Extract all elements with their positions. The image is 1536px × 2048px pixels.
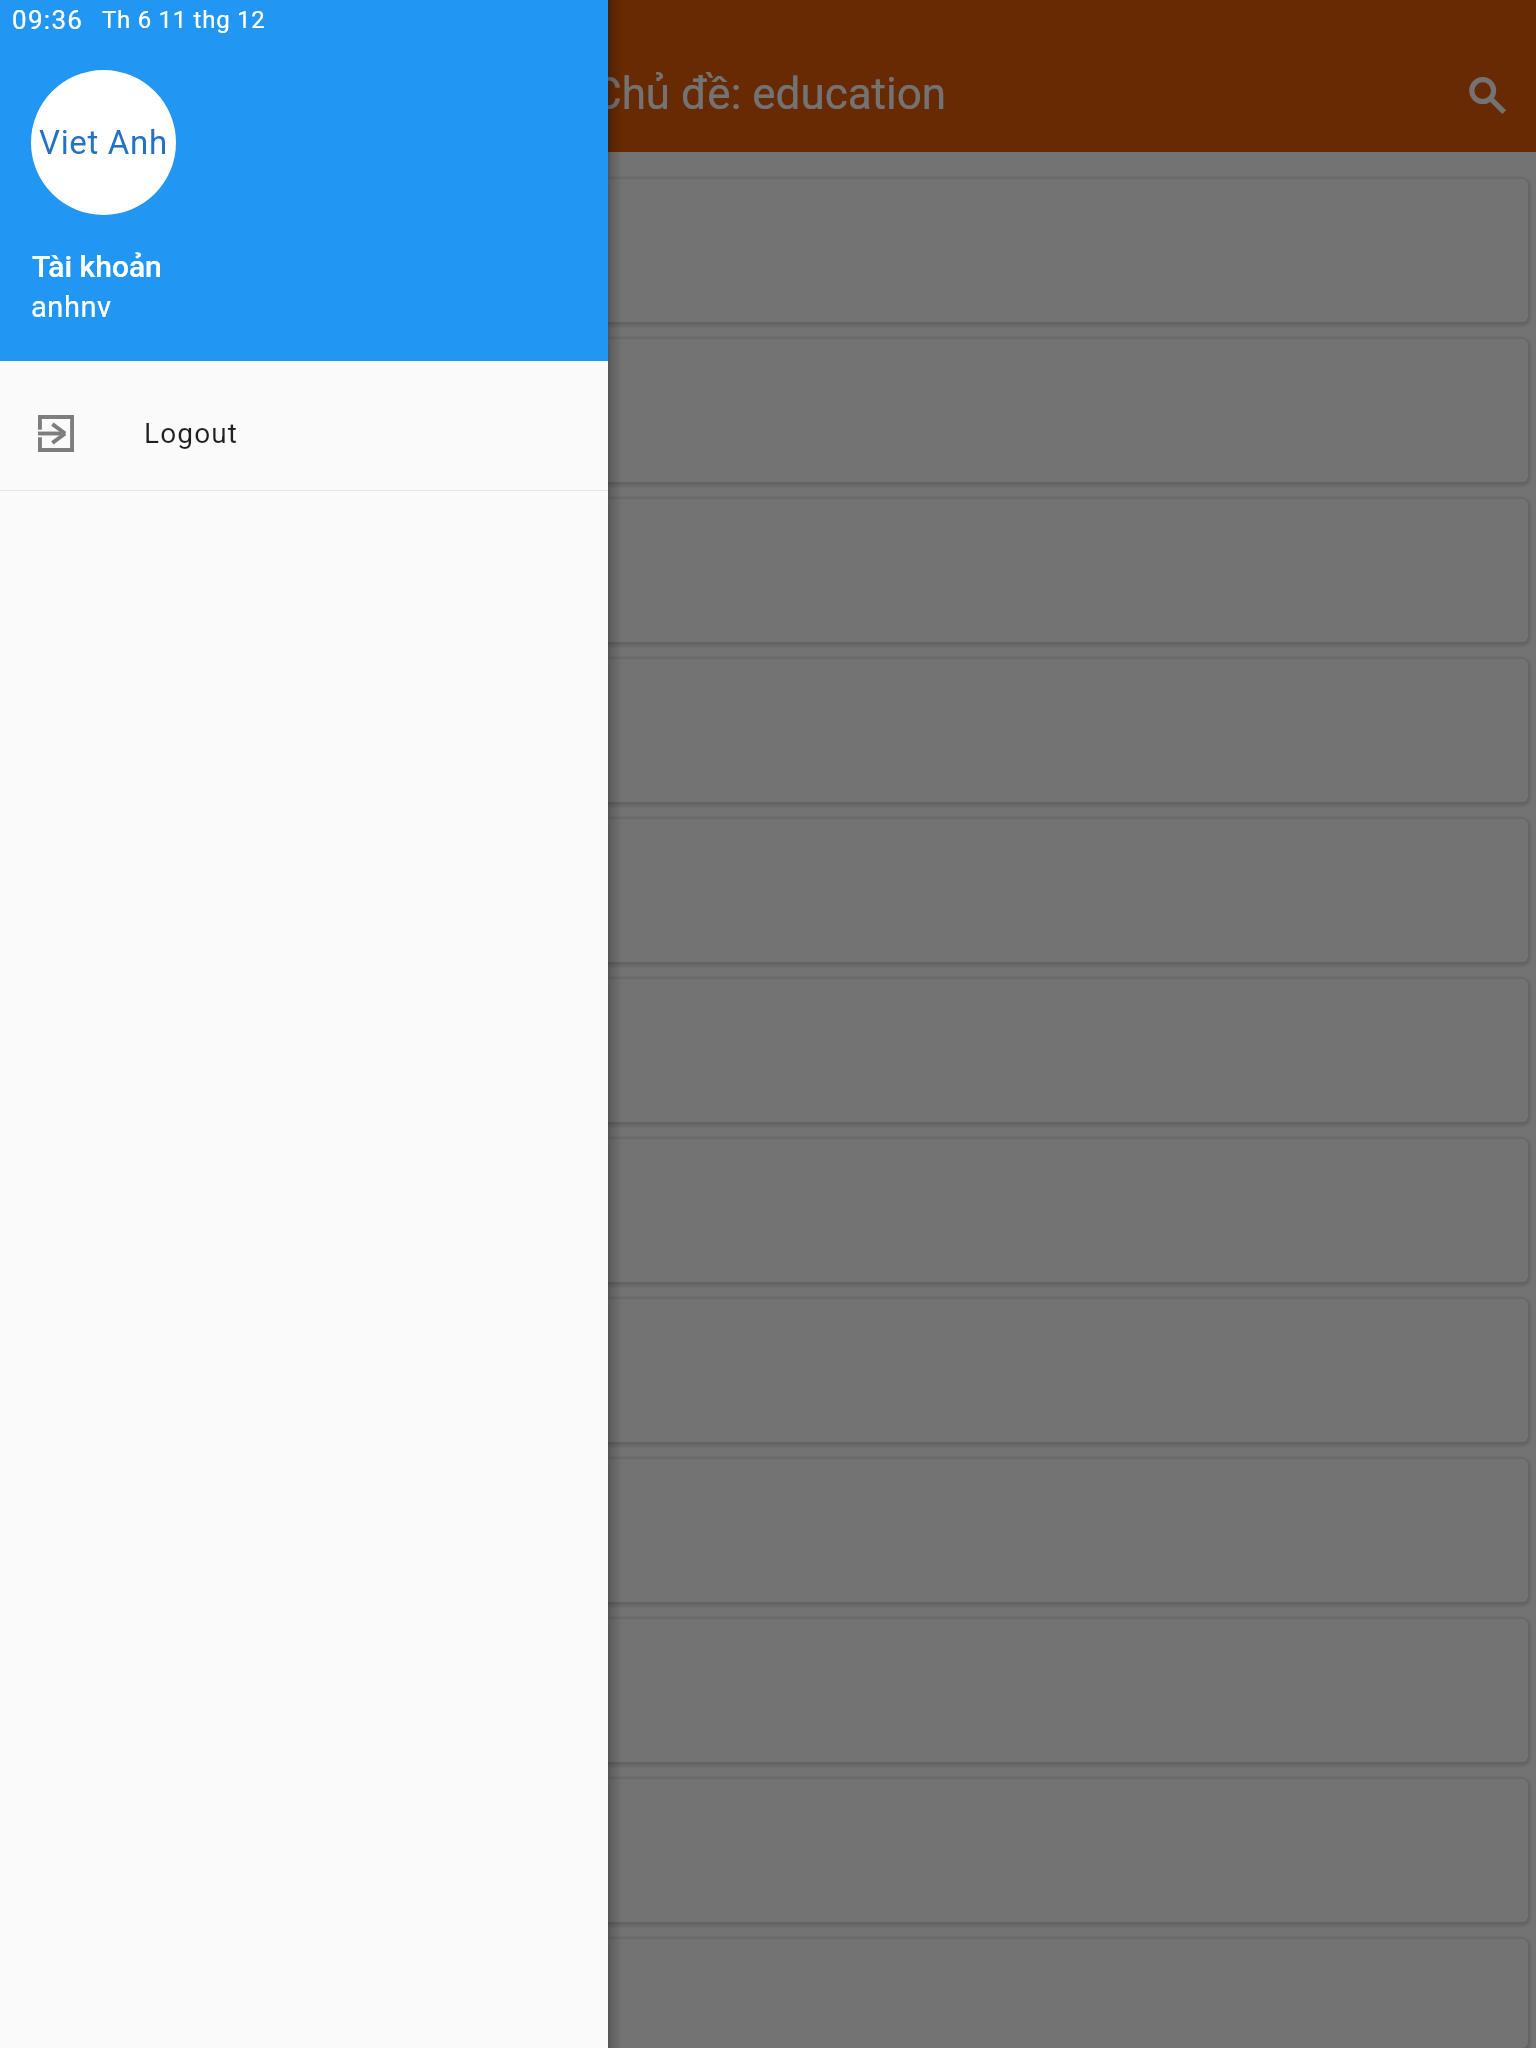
button[interactable] bbox=[0, 979, 1536, 1122]
button[interactable] bbox=[0, 1939, 1536, 2048]
button[interactable] bbox=[0, 499, 1536, 642]
staticText: Tài khoản bbox=[32, 249, 162, 284]
button[interactable] bbox=[0, 1619, 1536, 1762]
button[interactable]: Logout bbox=[0, 361, 608, 490]
button[interactable] bbox=[0, 659, 1536, 802]
button[interactable] bbox=[0, 1459, 1536, 1602]
button[interactable] bbox=[0, 1779, 1536, 1922]
button[interactable] bbox=[0, 819, 1536, 962]
button[interactable]: Search bbox=[1440, 48, 1536, 144]
button[interactable] bbox=[0, 1139, 1536, 1282]
staticText: anhnv bbox=[31, 290, 112, 324]
staticText: Viet Anh bbox=[39, 123, 168, 162]
staticText: Logout bbox=[144, 417, 239, 450]
button[interactable] bbox=[0, 179, 1536, 322]
button[interactable] bbox=[0, 339, 1536, 482]
button[interactable] bbox=[0, 1299, 1536, 1442]
staticText: 09:36 bbox=[12, 5, 84, 35]
staticText: Th 6 11 thg 12 bbox=[102, 6, 266, 34]
staticText: Chủ đề: education bbox=[593, 68, 947, 120]
